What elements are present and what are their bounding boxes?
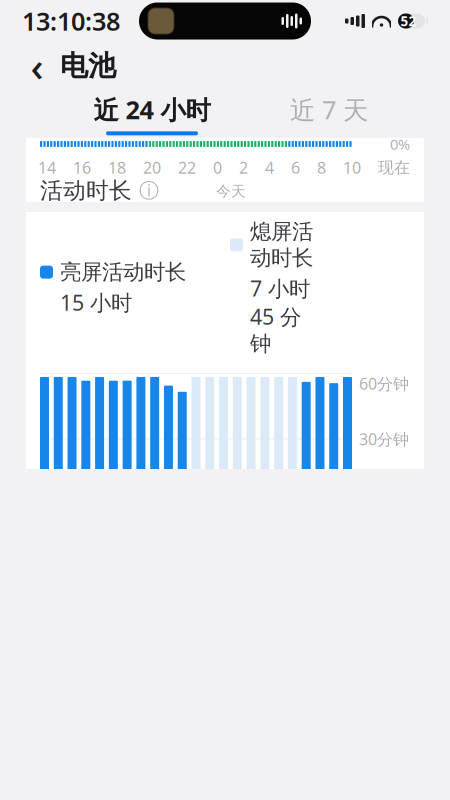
staticText: 60分钟 xyxy=(359,373,409,394)
staticText: 0 xyxy=(213,157,222,178)
staticText: 22 xyxy=(178,157,196,178)
staticText: ‹ xyxy=(30,39,43,92)
staticText: 15 小时 xyxy=(60,288,132,316)
staticText: 8 xyxy=(317,157,326,178)
staticText: 近 7 天 xyxy=(290,93,368,126)
staticText: 熄屏活动时长 xyxy=(250,219,313,271)
staticText: 0% xyxy=(390,134,410,154)
staticText: 7 小时 45 分钟 xyxy=(250,274,310,357)
staticText: 10 xyxy=(343,157,361,178)
staticText: ⓘ xyxy=(139,178,159,203)
button[interactable]: 返回 xyxy=(20,46,54,86)
staticText: 今天 xyxy=(216,182,246,200)
staticText: 30分钟 xyxy=(359,428,409,449)
staticText: 4 xyxy=(265,157,274,178)
button[interactable]: 近 24 小时 xyxy=(62,92,242,136)
staticText: 14 xyxy=(38,157,56,178)
staticText: 电池 xyxy=(60,49,116,83)
button[interactable]: 近 7 天 xyxy=(254,92,404,136)
staticText: 近 24 小时 xyxy=(93,93,210,126)
button[interactable]: 关于活动时长 xyxy=(139,181,159,201)
staticText: 13:10:38 xyxy=(22,4,120,38)
staticText: 活动时长 xyxy=(40,177,132,205)
staticText: 2 xyxy=(239,157,248,178)
staticText: 6 xyxy=(291,157,300,178)
staticText: 18 xyxy=(108,157,126,178)
staticText: 20 xyxy=(143,157,161,178)
staticText: 亮屏活动时长 xyxy=(60,259,186,285)
staticText: 16 xyxy=(73,157,91,178)
staticText: 现在 xyxy=(378,158,410,177)
staticText: 52 xyxy=(400,12,416,30)
